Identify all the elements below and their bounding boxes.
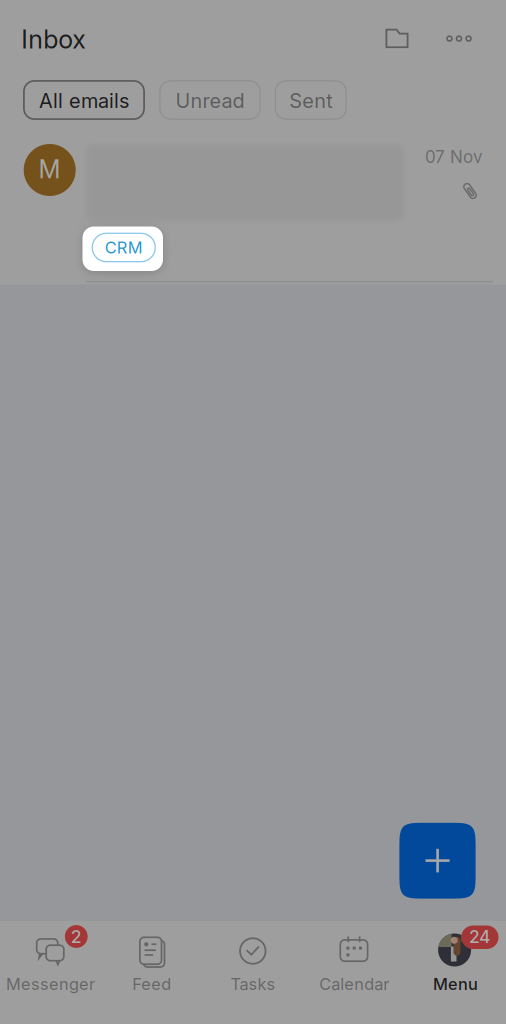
staticText: CRM — [105, 238, 143, 257]
staticText: Menu — [433, 974, 478, 994]
staticText: 07 Nov — [425, 146, 483, 167]
button[interactable]: Sent — [274, 80, 347, 120]
button[interactable]: Create — [399, 823, 476, 899]
staticText: Feed — [132, 974, 171, 994]
staticText: Inbox — [21, 24, 86, 55]
staticText: 24 — [469, 926, 490, 947]
staticText: Sent — [289, 89, 332, 113]
button[interactable]: M — [0, 130, 506, 282]
button[interactable]: All emails — [23, 80, 145, 120]
button[interactable]: 24 — [405, 921, 506, 1024]
staticText: Calendar — [319, 974, 389, 994]
button[interactable]: CRM — [82, 226, 163, 271]
button[interactable]: Tasks — [202, 921, 304, 1024]
staticText: Messenger — [6, 974, 95, 994]
staticText: All emails — [39, 89, 129, 113]
button[interactable]: Folders — [376, 16, 420, 60]
staticText: M — [39, 154, 61, 184]
staticText: Unread — [175, 89, 244, 113]
button[interactable]: Unread — [159, 80, 261, 120]
staticText: 2 — [71, 926, 82, 947]
staticText: Tasks — [230, 974, 275, 994]
button[interactable]: More options — [437, 16, 481, 60]
button[interactable]: Feed — [101, 921, 202, 1024]
button[interactable]: 2 — [0, 921, 101, 1024]
button[interactable]: Calendar — [304, 921, 405, 1024]
